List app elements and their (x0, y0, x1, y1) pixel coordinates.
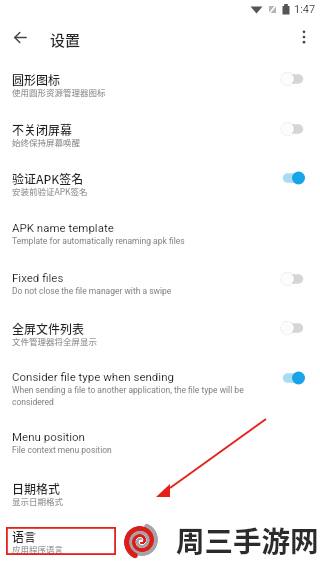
staticText: 安装前验证APK签名 (12, 185, 88, 197)
button[interactable]: Toggle on (281, 169, 305, 187)
staticText: 1:47 (294, 3, 316, 16)
button[interactable]: More options (293, 26, 315, 48)
staticText: Do not close the file manager with a swi… (12, 286, 172, 296)
staticText: considered (12, 397, 54, 407)
staticText: Menu position (12, 430, 85, 443)
staticText: File context menu position (12, 445, 112, 455)
button[interactable]: APK name template (0, 221, 320, 255)
button[interactable]: Fixed files (0, 271, 320, 305)
staticText: 周三手游网 (176, 519, 319, 560)
staticText: 日期格式 (12, 480, 61, 497)
button[interactable]: Toggle off (281, 270, 305, 288)
staticText: 设置 (50, 29, 81, 51)
button[interactable]: 圆形图标 (0, 71, 320, 105)
staticText: APK name template (12, 221, 114, 234)
staticText: 圆形图标 (12, 71, 61, 88)
staticText: Template for automatically renaming apk … (12, 236, 185, 246)
staticText: 全屏文件列表 (12, 320, 85, 337)
staticText: 文件管理器将全屏显示 (12, 335, 98, 347)
button[interactable]: Back (9, 26, 32, 49)
button[interactable]: 语言 (0, 528, 320, 562)
staticText: 验证APK签名 (12, 170, 84, 187)
staticText: 显示日期格式 (12, 495, 64, 507)
button[interactable]: Toggle on (281, 369, 305, 387)
button[interactable]: Consider file type when sending (0, 370, 320, 416)
staticText: 始终保持屏幕唤醒 (12, 136, 81, 148)
button[interactable]: Toggle off (281, 70, 305, 88)
staticText: 使用圆形资源管理器图标 (12, 86, 106, 98)
button[interactable]: 日期格式 (0, 480, 320, 514)
staticText: 应用程序语言 (12, 543, 64, 555)
button[interactable]: Toggle off (281, 120, 305, 138)
staticText: Fixed files (12, 271, 64, 284)
staticText: When sending a file to another applicati… (12, 385, 244, 395)
button[interactable]: 不关闭屏幕 (0, 121, 320, 155)
button[interactable]: 验证APK签名 (0, 170, 320, 204)
button[interactable]: 全屏文件列表 (0, 320, 320, 354)
staticText: 语言 (12, 528, 37, 545)
button[interactable]: Toggle off (281, 319, 305, 337)
staticText: Consider file type when sending (12, 370, 174, 383)
button[interactable]: Menu position (0, 430, 320, 464)
staticText: 不关闭屏幕 (12, 121, 73, 138)
